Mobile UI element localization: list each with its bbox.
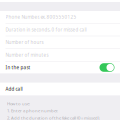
staticText: Add call <box>5 86 22 92</box>
staticText: In the past <box>5 64 30 71</box>
staticText: Duration in seconds, 0 for missed call <box>5 27 86 33</box>
button[interactable]: In the past <box>0 61 120 74</box>
button[interactable]: Phone Number, ex. 8005550125 <box>0 11 120 23</box>
staticText: Phone Number, ex. 8005550125 <box>5 14 76 20</box>
staticText: Number of hours <box>5 39 43 45</box>
button[interactable]: Number of hours <box>0 36 120 48</box>
button[interactable]: Add call <box>0 83 120 96</box>
staticText: 2. Add the duration of the fake call (0 … <box>7 115 100 120</box>
button[interactable]: Number of minutes <box>0 49 120 61</box>
staticText: Number of minutes <box>5 52 48 58</box>
staticText: 1. Enter a phone number. <box>7 108 58 113</box>
staticText: How to use: <box>7 101 30 106</box>
button[interactable]: Duration in seconds, 0 for missed call <box>0 24 120 36</box>
